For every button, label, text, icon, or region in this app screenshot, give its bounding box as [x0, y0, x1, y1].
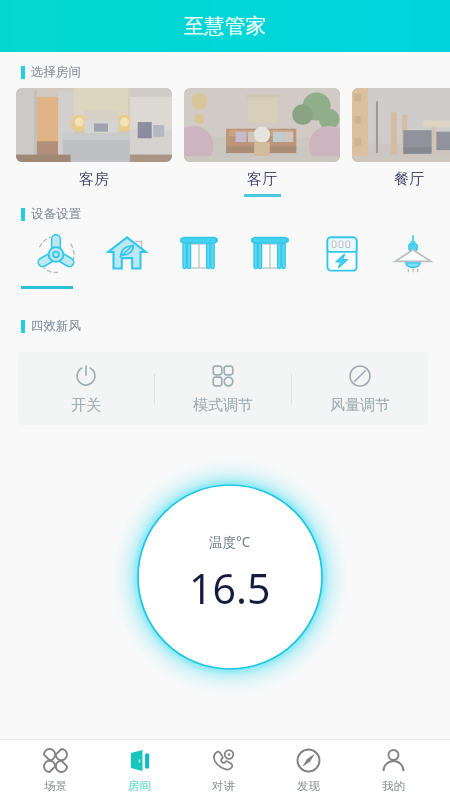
staticText: 设备设置: [31, 206, 81, 222]
staticText: 餐厅: [394, 170, 424, 189]
button[interactable]: 新风: [30, 228, 82, 289]
button[interactable]: 窗帘: [173, 228, 225, 286]
staticText: 对讲: [212, 779, 235, 793]
button[interactable]: 客厅: [184, 88, 340, 197]
button[interactable]: 餐厅: [352, 88, 450, 194]
button[interactable]: 房间: [97, 740, 181, 800]
staticText: 16.5: [189, 560, 271, 616]
button[interactable]: 发现: [266, 740, 351, 800]
staticText: 温度°C: [209, 533, 251, 551]
staticText: 至慧管家: [184, 13, 266, 39]
button[interactable]: 场景: [13, 740, 97, 800]
button[interactable]: 环境: [101, 228, 153, 286]
staticText: 选择房间: [31, 64, 81, 80]
staticText: 四效新风: [31, 318, 81, 334]
button[interactable]: 灯光: [387, 228, 439, 286]
staticText: 我的: [382, 779, 405, 793]
staticText: 开关: [71, 396, 101, 415]
staticText: 房间: [128, 779, 151, 793]
button[interactable]: 风量调节: [292, 352, 428, 425]
button[interactable]: 我的: [351, 740, 436, 800]
button[interactable]: 开关: [18, 352, 154, 425]
staticText: 发现: [297, 779, 320, 793]
staticText: 场景: [44, 779, 67, 793]
button[interactable]: 开关面板: [316, 228, 368, 286]
button[interactable]: 模式调节: [155, 352, 291, 425]
button[interactable]: 对讲: [181, 740, 266, 800]
staticText: 客厅: [247, 170, 277, 189]
button[interactable]: 窗帘2: [244, 228, 296, 286]
staticText: 客房: [79, 170, 109, 189]
button[interactable]: 客房: [16, 88, 172, 194]
staticText: 风量调节: [330, 396, 390, 415]
staticText: 模式调节: [193, 396, 253, 415]
